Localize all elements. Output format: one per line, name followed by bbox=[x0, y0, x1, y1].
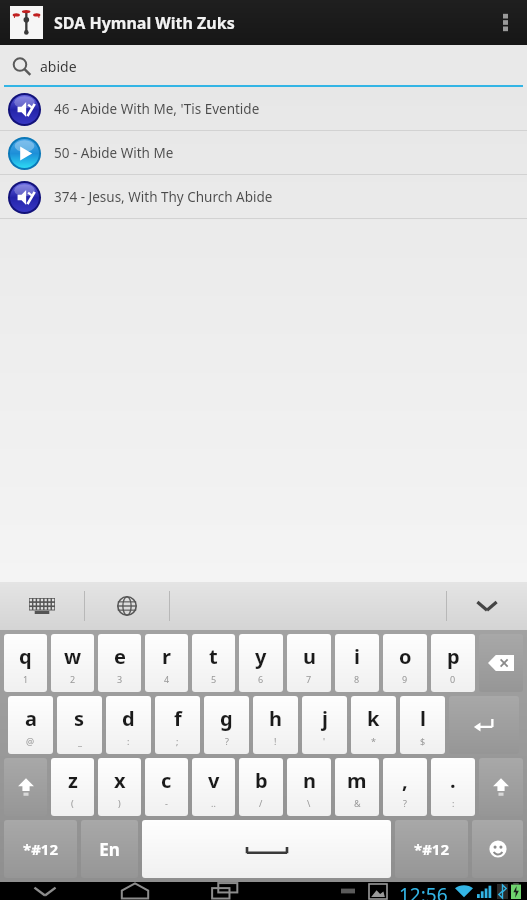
staticText: _ bbox=[78, 735, 82, 747]
staticText: 7 bbox=[306, 673, 312, 685]
staticText: s bbox=[74, 705, 85, 732]
staticText: k bbox=[367, 705, 380, 732]
staticText: - bbox=[165, 797, 168, 809]
staticText: : bbox=[127, 735, 130, 747]
button[interactable]: *#12 bbox=[4, 820, 77, 878]
staticText: 9 bbox=[402, 673, 408, 685]
staticText: ! bbox=[274, 735, 277, 747]
staticText: l bbox=[420, 705, 426, 732]
button[interactable]: k bbox=[351, 696, 396, 754]
staticText: ' bbox=[323, 735, 326, 747]
button[interactable]: g bbox=[204, 696, 249, 754]
button[interactable]: h bbox=[253, 696, 298, 754]
button[interactable]: w bbox=[51, 634, 94, 692]
staticText: g bbox=[220, 705, 233, 732]
button[interactable]: Shift bbox=[479, 758, 523, 816]
staticText: n bbox=[303, 767, 316, 794]
button[interactable]: Emoji bbox=[472, 820, 523, 878]
staticText: y bbox=[255, 643, 267, 670]
button[interactable]: *#12 bbox=[395, 820, 468, 878]
staticText: *#12 bbox=[23, 839, 58, 859]
staticText: 50 - Abide With Me bbox=[54, 144, 174, 162]
button[interactable]: v bbox=[192, 758, 235, 816]
button[interactable]: n bbox=[287, 758, 331, 816]
button[interactable]: l bbox=[400, 696, 445, 754]
button[interactable]: 46 - Abide With Me, 'Tis Eventide bbox=[0, 87, 527, 130]
button[interactable]: u bbox=[287, 634, 331, 692]
button[interactable]: Shift bbox=[4, 758, 47, 816]
staticText: t bbox=[209, 643, 218, 670]
staticText: ) bbox=[118, 797, 121, 809]
staticText: 4 bbox=[164, 673, 170, 685]
button[interactable]: , bbox=[383, 758, 427, 816]
button[interactable]: b bbox=[239, 758, 283, 816]
staticText: *#12 bbox=[414, 839, 449, 859]
button[interactable]: abide bbox=[0, 45, 527, 87]
staticText: / bbox=[259, 797, 263, 809]
staticText: * bbox=[371, 735, 376, 747]
button[interactable]: r bbox=[145, 634, 188, 692]
staticText: .. bbox=[211, 797, 216, 809]
staticText: \ bbox=[307, 797, 311, 809]
staticText: ? bbox=[403, 797, 407, 809]
button[interactable]: o bbox=[383, 634, 427, 692]
button[interactable]: More options bbox=[487, 0, 523, 45]
staticText: 374 - Jesus, With Thy Church Abide bbox=[54, 188, 273, 206]
staticText: w bbox=[64, 643, 82, 670]
button[interactable]: App icon, navigate up bbox=[10, 6, 43, 39]
staticText: a bbox=[25, 705, 37, 732]
button[interactable]: m bbox=[335, 758, 379, 816]
button[interactable]: En bbox=[81, 820, 138, 878]
button[interactable]: Recent apps bbox=[180, 882, 270, 900]
button[interactable]: i bbox=[335, 634, 379, 692]
staticText: e bbox=[114, 643, 126, 670]
staticText: SDA Hymnal With Zuks bbox=[54, 12, 235, 34]
staticText: x bbox=[114, 767, 126, 794]
staticText: 1 bbox=[23, 673, 29, 685]
button[interactable]: c bbox=[145, 758, 188, 816]
staticText: 5 bbox=[211, 673, 217, 685]
staticText: m bbox=[347, 767, 367, 794]
button[interactable]: x bbox=[98, 758, 141, 816]
button[interactable]: Home bbox=[90, 882, 180, 900]
button[interactable]: Hide keyboard bbox=[447, 582, 527, 630]
staticText: , bbox=[402, 767, 408, 794]
button[interactable]: Enter bbox=[449, 696, 519, 754]
staticText: : bbox=[452, 797, 455, 809]
button[interactable]: q bbox=[4, 634, 47, 692]
button[interactable]: Change input language bbox=[85, 582, 169, 630]
button[interactable]: Back bbox=[0, 882, 90, 900]
button[interactable]: z bbox=[51, 758, 94, 816]
button[interactable]: p bbox=[431, 634, 475, 692]
staticText: p bbox=[447, 643, 460, 670]
staticText: 3 bbox=[117, 673, 123, 685]
staticText: $ bbox=[420, 735, 426, 747]
staticText: abide bbox=[40, 57, 77, 76]
button[interactable]: 50 - Abide With Me bbox=[0, 131, 527, 174]
staticText: c bbox=[161, 767, 172, 794]
button[interactable]: d bbox=[106, 696, 151, 754]
button[interactable]: Space bbox=[142, 820, 391, 878]
staticText: b bbox=[255, 767, 268, 794]
button[interactable]: y bbox=[239, 634, 283, 692]
button[interactable]: j bbox=[302, 696, 347, 754]
button[interactable]: . bbox=[431, 758, 475, 816]
staticText: En bbox=[99, 838, 120, 861]
button[interactable]: t bbox=[192, 634, 235, 692]
button[interactable]: s bbox=[57, 696, 102, 754]
staticText: @ bbox=[26, 735, 35, 747]
button[interactable]: f bbox=[155, 696, 200, 754]
staticText: z bbox=[68, 767, 78, 794]
staticText: 8 bbox=[354, 673, 360, 685]
button[interactable]: Keyboard layout bbox=[0, 582, 84, 630]
staticText: . bbox=[450, 767, 456, 794]
staticText: 46 - Abide With Me, 'Tis Eventide bbox=[54, 100, 260, 118]
staticText: v bbox=[208, 767, 220, 794]
staticText: & bbox=[354, 797, 361, 809]
staticText: ( bbox=[71, 797, 74, 809]
staticText: 2 bbox=[70, 673, 76, 685]
button[interactable]: 374 - Jesus, With Thy Church Abide bbox=[0, 175, 527, 218]
button[interactable]: Backspace bbox=[479, 634, 523, 692]
button[interactable]: e bbox=[98, 634, 141, 692]
button[interactable]: a bbox=[8, 696, 53, 754]
